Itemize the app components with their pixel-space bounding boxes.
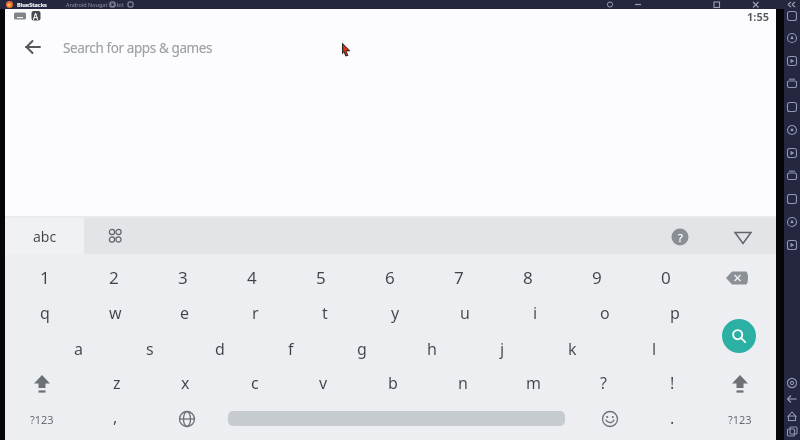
button[interactable]: 9 xyxy=(567,264,627,290)
staticText: a xyxy=(74,338,83,360)
button[interactable]: Search for apps & games xyxy=(63,37,363,59)
button[interactable]: 5 xyxy=(291,264,351,290)
button[interactable]: abc xyxy=(20,224,70,248)
button[interactable]: k xyxy=(542,336,602,362)
button[interactable]: x xyxy=(155,370,215,396)
button[interactable]: f xyxy=(261,336,321,362)
staticText: e xyxy=(180,302,190,324)
staticText: abc xyxy=(33,227,57,246)
button[interactable]: e xyxy=(155,300,215,326)
staticText: g xyxy=(357,338,367,360)
staticText: Search for apps & games xyxy=(63,39,213,57)
staticText: q xyxy=(40,302,50,324)
staticText: 8 xyxy=(523,266,533,289)
button[interactable]: p xyxy=(645,300,705,326)
button[interactable]: 7 xyxy=(429,264,489,290)
button[interactable] xyxy=(5,218,84,254)
button[interactable]: ?123 xyxy=(12,406,72,432)
button[interactable]: q xyxy=(15,300,75,326)
staticText: ?123 xyxy=(728,412,752,427)
button[interactable]: l xyxy=(624,336,684,362)
button[interactable]: 3 xyxy=(153,264,213,290)
staticText: 4 xyxy=(247,266,257,289)
staticText: p xyxy=(670,302,680,324)
button[interactable]: 4 xyxy=(222,264,282,290)
staticText: 1 xyxy=(40,266,50,289)
staticText: , xyxy=(113,406,118,428)
button[interactable]: u xyxy=(435,300,495,326)
button[interactable]: z xyxy=(87,370,147,396)
staticText: r xyxy=(252,302,259,324)
staticText: v xyxy=(319,372,328,394)
staticText: Android Nougat 32-bit xyxy=(66,1,124,8)
staticText: n xyxy=(458,372,468,394)
staticText: BlueStacks xyxy=(17,1,47,8)
button[interactable]: 6 xyxy=(360,264,420,290)
staticText: . xyxy=(670,407,675,429)
button[interactable]: 2 xyxy=(84,264,144,290)
button[interactable] xyxy=(732,229,754,247)
button[interactable]: m xyxy=(503,370,563,396)
button[interactable]: 8 xyxy=(498,264,558,290)
button[interactable]: ?123 xyxy=(710,406,770,432)
button[interactable]: ? xyxy=(573,370,633,396)
staticText: x xyxy=(181,372,190,394)
button[interactable] xyxy=(722,319,756,353)
staticText: i xyxy=(533,302,538,324)
button[interactable]: c xyxy=(225,370,285,396)
staticText: h xyxy=(427,338,437,360)
button[interactable]: n xyxy=(433,370,493,396)
button[interactable] xyxy=(600,409,620,429)
staticText: m xyxy=(526,372,541,394)
staticText: ! xyxy=(670,372,675,394)
button[interactable]: h xyxy=(402,336,462,362)
staticText: o xyxy=(600,302,610,324)
staticText: c xyxy=(251,372,259,394)
button[interactable]: w xyxy=(85,300,145,326)
button[interactable] xyxy=(727,373,753,395)
button[interactable] xyxy=(177,409,197,429)
staticText: ? xyxy=(600,372,607,394)
staticText: 0 xyxy=(661,266,671,289)
button[interactable] xyxy=(670,227,690,247)
staticText: 9 xyxy=(592,266,602,289)
staticText: l xyxy=(652,338,657,360)
staticText: y xyxy=(391,302,400,324)
button[interactable]: 1 xyxy=(15,264,75,290)
button[interactable]: o xyxy=(575,300,635,326)
button[interactable]: a xyxy=(48,336,108,362)
staticText: 5 xyxy=(316,266,326,289)
staticText: t xyxy=(322,302,328,324)
staticText: z xyxy=(113,372,121,394)
button[interactable]: i xyxy=(505,300,565,326)
staticText: s xyxy=(146,338,154,360)
button[interactable]: b xyxy=(363,370,423,396)
button[interactable]: y xyxy=(365,300,425,326)
staticText: 7 xyxy=(454,266,464,289)
button[interactable]: s xyxy=(120,336,180,362)
button[interactable] xyxy=(29,373,55,395)
button[interactable]: r xyxy=(225,300,285,326)
staticText: f xyxy=(288,338,294,360)
staticText: A xyxy=(33,11,39,22)
staticText: 2 xyxy=(109,266,119,289)
button[interactable] xyxy=(724,268,750,288)
button[interactable]: , xyxy=(85,404,145,430)
staticText: ?123 xyxy=(30,412,54,427)
staticText: w xyxy=(109,302,122,324)
button[interactable]: ! xyxy=(642,370,702,396)
button[interactable] xyxy=(21,35,45,59)
staticText: 3 xyxy=(178,266,188,289)
staticText: ? xyxy=(678,230,683,245)
button[interactable]: v xyxy=(293,370,353,396)
staticText: u xyxy=(460,302,470,324)
button[interactable]: 0 xyxy=(636,264,696,290)
button[interactable]: t xyxy=(295,300,355,326)
button[interactable]: j xyxy=(472,336,532,362)
button[interactable]: g xyxy=(332,336,392,362)
button[interactable]: d xyxy=(190,336,250,362)
button[interactable] xyxy=(105,226,125,246)
staticText: d xyxy=(215,338,225,360)
button[interactable]: . xyxy=(642,405,702,431)
